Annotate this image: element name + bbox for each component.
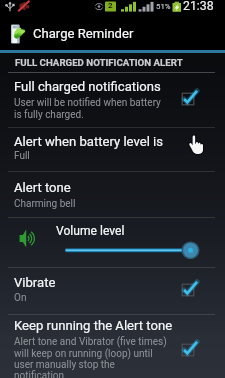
staticText: 2 — [108, 1, 113, 10]
button[interactable]: Full charged notifications — [0, 74, 225, 127]
staticText: Full — [14, 150, 30, 162]
button[interactable]: Keep running the Alert tone toggle — [179, 341, 197, 359]
button[interactable]: Alert when battery level is — [0, 127, 225, 172]
button[interactable]: Volume level — [0, 217, 225, 267]
button[interactable]: Alert tone — [0, 171, 225, 217]
staticText: 51% — [156, 2, 171, 11]
staticText: Keep running the Alert tone — [14, 318, 181, 333]
button[interactable]: Charge Reminder — [0, 13, 225, 50]
button[interactable]: Vibrate — [0, 267, 225, 314]
staticText: Vibrate — [14, 275, 56, 290]
staticText: FULL CHARGED NOTIFICATION ALERT — [15, 57, 183, 68]
staticText: Alert tone and Vibrator (five times) wil… — [14, 336, 167, 378]
staticText: Alert when battery level is — [14, 134, 164, 149]
button[interactable]: Full charged notifications toggle — [179, 90, 197, 108]
staticText: Charge Reminder — [33, 26, 134, 41]
staticText: 21:38 — [183, 0, 214, 12]
staticText: Charming bell — [14, 198, 76, 210]
staticText: Alert tone — [14, 180, 71, 195]
button[interactable]: Vibrate toggle — [179, 281, 197, 299]
staticText: Full charged notifications — [14, 79, 161, 94]
button[interactable]: Keep running the Alert tone — [0, 314, 225, 378]
staticText: On — [14, 292, 27, 304]
staticText: Volume level — [56, 224, 125, 238]
staticText: User will be notified when battery is fu… — [14, 97, 161, 121]
